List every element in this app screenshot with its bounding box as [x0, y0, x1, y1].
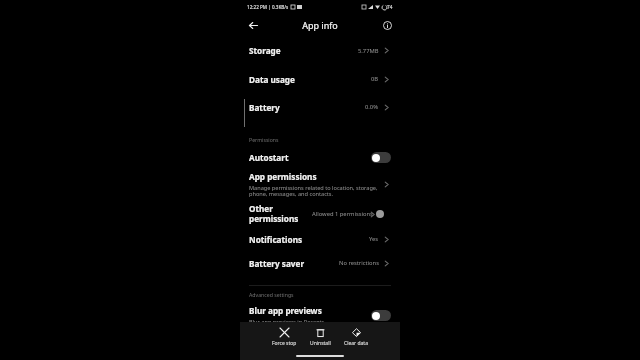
- button[interactable]: Notifications: [240, 227, 400, 251]
- staticText: App info: [302, 19, 338, 31]
- staticText: 74: [387, 4, 393, 10]
- button[interactable]: App permissions: [240, 168, 400, 201]
- staticText: Notifications: [249, 234, 303, 245]
- staticText: Permissions: [249, 136, 279, 143]
- staticText: Allowed 1 permissions: [312, 210, 373, 218]
- button[interactable]: Force stop: [268, 326, 301, 349]
- staticText: Storage: [249, 45, 281, 56]
- button[interactable]: Back: [245, 17, 261, 33]
- staticText: Autostart: [249, 152, 289, 163]
- button[interactable]: Info: [379, 17, 395, 33]
- button[interactable]: Uninstall: [306, 326, 335, 349]
- button[interactable]: Other permissions: [240, 201, 400, 227]
- button[interactable]: Blur app previews: [240, 302, 400, 328]
- button[interactable]: Toggle: [371, 310, 391, 321]
- button[interactable]: Clear data: [340, 326, 372, 349]
- staticText: Uninstall: [310, 340, 331, 347]
- staticText: Clear data: [344, 340, 368, 347]
- staticText: Battery: [249, 102, 280, 113]
- staticText: Install apps from unknown sources: [249, 329, 321, 351]
- staticText: Blur app previews in Recents: [249, 318, 325, 326]
- staticText: No restrictions: [339, 259, 379, 267]
- staticText: Yes: [369, 235, 379, 243]
- staticText: App permissions: [249, 171, 317, 182]
- button[interactable]: Toggle: [371, 152, 391, 163]
- staticText: 12:22 PM | 0.3KB/s: [247, 4, 289, 10]
- staticText: 0.0%: [365, 103, 379, 111]
- staticText: Force stop: [272, 340, 297, 347]
- staticText: Manage permissions related to location, …: [249, 184, 378, 198]
- staticText: Other permissions: [249, 203, 312, 225]
- staticText: 5.77MB: [358, 47, 379, 55]
- button[interactable]: Storage: [240, 36, 400, 65]
- staticText: Advanced settings: [249, 291, 294, 298]
- staticText: Blur app previews: [249, 305, 322, 316]
- button[interactable]: Install apps from unknown sources: [240, 328, 400, 352]
- staticText: Battery saver: [249, 258, 305, 269]
- staticText: 0B: [371, 75, 379, 83]
- button[interactable]: Autostart: [240, 146, 400, 168]
- button[interactable]: Battery saver: [240, 251, 400, 275]
- button[interactable]: Data usage: [240, 65, 400, 93]
- button[interactable]: Battery: [240, 93, 400, 121]
- staticText: Data usage: [249, 74, 295, 85]
